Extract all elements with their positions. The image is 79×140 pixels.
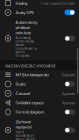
button[interactable]: Ovládání expozic	[0, 98, 79, 107]
staticText: Hodiny	[15, 0, 27, 6]
staticText: Zvuků	[15, 81, 25, 87]
staticText: Celé i poloviční hod.	[40, 0, 74, 6]
staticText: Formát dokplam	[15, 109, 44, 115]
button[interactable]: Zvuků	[0, 79, 79, 89]
staticText: Vybírá automaticky při zavření záznamů	[15, 130, 35, 140]
button[interactable]: Časovač	[0, 89, 79, 98]
staticText: Zvuky GPS	[15, 10, 33, 15]
staticText: Vypnuto	[61, 91, 74, 96]
staticText: Automaticky přidat nahrávat záznam fotog…	[15, 36, 37, 57]
staticText: Zachovat nastavení	[15, 119, 31, 130]
staticText: NASTAVENÍ ZACHYCOVÁNÍ	[5, 63, 55, 68]
button[interactable]: Zvuky GPS	[0, 8, 79, 17]
staticText: Automaticky přidávat nahrávat	[15, 19, 37, 35]
staticText: Vypnuto	[61, 100, 74, 105]
staticText: Časovač	[15, 91, 30, 96]
button[interactable]: Formát dokplam	[0, 107, 79, 117]
button[interactable]: Zachovat nastavení	[0, 117, 79, 140]
button[interactable]: Hodiny	[0, 0, 79, 8]
staticText: Mřížka fotoaparátu	[15, 72, 48, 77]
staticText: Zapnuto	[61, 72, 74, 77]
button[interactable]: Automaticky přidávat nahrávat	[0, 17, 79, 60]
button[interactable]: Mřížka fotoaparátu	[0, 70, 79, 79]
staticText: Ovládání expozic	[15, 100, 44, 105]
